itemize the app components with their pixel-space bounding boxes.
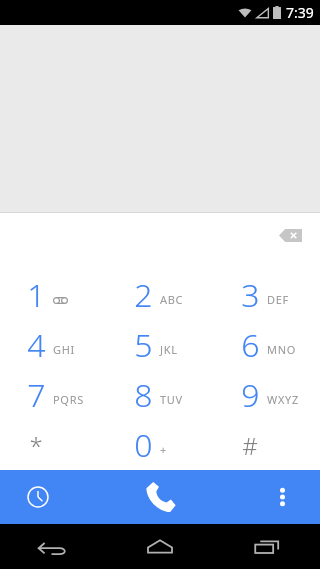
- staticText: GHI: [53, 342, 75, 357]
- staticText: 4: [27, 323, 46, 367]
- staticText: JKL: [160, 342, 178, 357]
- staticText: 0: [134, 423, 153, 467]
- staticText: MNO: [267, 342, 297, 357]
- button[interactable]: 9: [213, 370, 320, 420]
- staticText: 6: [241, 323, 260, 367]
- button[interactable]: 0: [106, 420, 213, 470]
- staticText: 7: [27, 373, 46, 417]
- staticText: #: [242, 429, 258, 462]
- staticText: PQRS: [53, 392, 84, 407]
- button[interactable]: 5: [106, 320, 213, 370]
- button[interactable]: Recent apps: [213, 524, 320, 569]
- staticText: TUV: [160, 392, 183, 407]
- staticText: 5: [134, 323, 153, 367]
- staticText: 7:39: [286, 3, 314, 22]
- button[interactable]: 7: [0, 370, 106, 420]
- staticText: 8: [134, 373, 153, 417]
- button[interactable]: 4: [0, 320, 106, 370]
- button[interactable]: *: [0, 420, 106, 470]
- staticText: *: [29, 429, 43, 462]
- staticText: +: [160, 442, 167, 457]
- button[interactable]: Home: [106, 524, 213, 569]
- button[interactable]: Back: [0, 524, 106, 569]
- button[interactable]: Delete: [268, 217, 312, 253]
- button[interactable]: 3: [213, 269, 320, 320]
- button[interactable]: 6: [213, 320, 320, 370]
- button[interactable]: 2: [106, 269, 213, 320]
- staticText: DEF: [267, 292, 289, 307]
- staticText: WXYZ: [267, 392, 299, 407]
- staticText: 2: [134, 273, 153, 317]
- staticText: 9: [241, 373, 260, 417]
- button[interactable]: Call: [76, 470, 244, 524]
- button[interactable]: More options: [244, 470, 320, 524]
- button[interactable]: 8: [106, 370, 213, 420]
- button[interactable]: 1: [0, 269, 106, 320]
- button[interactable]: #: [213, 420, 320, 470]
- staticText: 3: [241, 273, 260, 317]
- button[interactable]: Call history: [0, 470, 76, 524]
- staticText: 1: [27, 273, 46, 317]
- staticText: ABC: [160, 292, 184, 307]
